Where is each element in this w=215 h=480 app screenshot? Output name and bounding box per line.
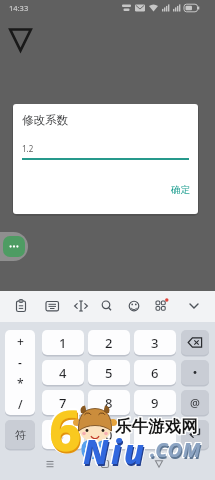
button[interactable] xyxy=(71,296,91,316)
staticText: Niu xyxy=(85,429,149,474)
staticText: 乐牛游戏网 xyxy=(114,416,197,437)
staticText: .COM xyxy=(149,435,200,462)
staticText: 3 xyxy=(151,334,159,352)
staticText: 1 xyxy=(59,334,67,352)
button[interactable] xyxy=(42,296,62,316)
staticText: / xyxy=(18,396,23,412)
staticText: Niu xyxy=(84,431,148,476)
staticText: Niu xyxy=(82,430,146,475)
staticText: 9 xyxy=(151,394,159,412)
button[interactable]: 2 xyxy=(88,330,130,355)
staticText: 6 xyxy=(50,390,83,466)
staticText: 6 xyxy=(49,391,82,467)
button[interactable] xyxy=(11,296,31,316)
staticText: 符 xyxy=(15,428,26,442)
button[interactable]: 5 xyxy=(88,360,130,385)
button[interactable]: 8 xyxy=(88,390,130,415)
staticText: Niu xyxy=(83,431,147,476)
staticText: Niu xyxy=(83,429,147,474)
staticText: * xyxy=(17,375,24,391)
button[interactable]: 3 xyxy=(134,330,176,355)
staticText: , xyxy=(61,427,65,442)
staticText: .COM xyxy=(151,438,202,465)
staticText: 6 xyxy=(47,391,80,467)
button[interactable] xyxy=(181,420,209,449)
staticText: .COM xyxy=(150,437,201,464)
button[interactable]: 7 xyxy=(42,390,84,415)
staticText: Niu xyxy=(82,429,146,474)
staticText: 6 xyxy=(49,389,82,465)
button[interactable]: 9 xyxy=(134,390,176,415)
button[interactable] xyxy=(124,296,144,316)
staticText: - xyxy=(18,354,22,370)
staticText: 乐牛游戏网 xyxy=(116,415,199,436)
staticText: Niu xyxy=(82,428,146,473)
staticText: 乐牛游戏网 xyxy=(114,417,197,438)
staticText: Niu xyxy=(83,428,147,473)
staticText: 6 xyxy=(48,392,81,468)
button[interactable]: 4 xyxy=(42,360,84,385)
staticText: 乐牛游戏网 xyxy=(115,416,198,437)
button[interactable] xyxy=(93,452,117,476)
staticText: 6 xyxy=(50,392,83,468)
button[interactable] xyxy=(3,236,25,257)
button[interactable] xyxy=(181,330,209,355)
button[interactable] xyxy=(5,330,35,415)
staticText: 乐牛游戏网 xyxy=(115,415,198,436)
button[interactable] xyxy=(181,360,209,385)
button[interactable]: @ xyxy=(181,390,209,415)
button[interactable]: 6 xyxy=(134,360,176,385)
staticText: 确定 xyxy=(171,184,190,196)
staticText: 6 xyxy=(48,390,81,466)
button[interactable] xyxy=(151,296,171,316)
staticText: 14:33 xyxy=(9,3,29,13)
staticText: 6 xyxy=(151,364,159,382)
staticText: 7 xyxy=(59,394,67,412)
staticText: 2 xyxy=(105,334,113,352)
staticText: 8 xyxy=(105,394,113,412)
staticText: 6 xyxy=(51,391,84,467)
staticText: 4 xyxy=(59,364,67,382)
staticText: 1.2 xyxy=(22,143,34,154)
staticText: 乐牛游戏网 xyxy=(115,417,198,438)
button[interactable] xyxy=(134,420,176,449)
button[interactable]: 确定 xyxy=(163,182,197,198)
staticText: .COM xyxy=(149,437,200,464)
button[interactable] xyxy=(38,452,62,476)
staticText: .COM xyxy=(150,435,201,462)
staticText: 修改系数 xyxy=(22,113,68,127)
staticText: 乐牛游戏网 xyxy=(116,416,199,437)
staticText: 乐牛游戏网 xyxy=(116,417,199,438)
button[interactable] xyxy=(97,296,117,316)
staticText: .COM xyxy=(149,436,200,463)
staticText: 0 xyxy=(105,426,113,444)
button[interactable]: 1 xyxy=(42,330,84,355)
staticText: 6 xyxy=(50,393,83,469)
staticText: .COM xyxy=(151,436,202,463)
button[interactable]: , xyxy=(42,420,84,449)
button[interactable]: 符 xyxy=(5,420,35,449)
staticText: 5 xyxy=(105,364,113,382)
button[interactable] xyxy=(184,296,204,316)
staticText: .COM xyxy=(151,437,202,464)
staticText: .COM xyxy=(150,436,201,463)
staticText: 6 xyxy=(49,393,82,469)
staticText: + xyxy=(17,333,24,349)
staticText: Niu xyxy=(84,428,148,473)
staticText: 乐牛游戏网 xyxy=(114,415,197,436)
button[interactable]: 0 xyxy=(88,420,130,449)
staticText: .COM xyxy=(151,435,202,462)
button[interactable] xyxy=(147,452,171,476)
staticText: Niu xyxy=(84,430,148,475)
staticText: @ xyxy=(190,395,200,410)
